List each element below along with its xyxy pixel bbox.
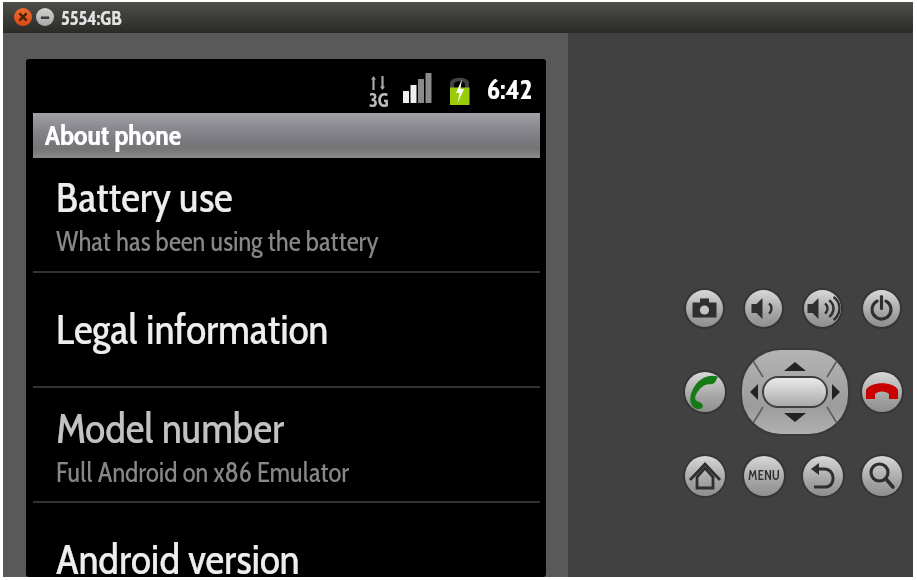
button[interactable]: Back [803,456,843,496]
button[interactable]: Volume up [804,290,841,327]
button[interactable]: End call [862,372,902,412]
staticText: Model number [56,402,285,453]
staticText: Android version [56,533,300,577]
staticText: 5554:GB [61,7,122,30]
button[interactable]: Select [764,378,826,406]
button[interactable]: Volume down [745,290,782,327]
staticText: What has been using the battery [56,225,379,258]
button[interactable]: Search [862,456,902,496]
button[interactable]: Power [863,290,900,327]
staticText: 6:42 [487,72,533,106]
button[interactable]: MENU [744,456,784,496]
button[interactable]: About phone [33,113,540,158]
button[interactable]: Legal information [26,274,546,389]
button[interactable]: Battery use [26,158,546,274]
staticText: Battery use [56,171,233,222]
button[interactable]: Close window [14,8,32,26]
button[interactable]: Android version [26,504,546,577]
button[interactable]: Call [685,372,725,412]
staticText: Full Android on x86 Emulator [56,456,350,489]
staticText: 3G [369,89,389,112]
button[interactable]: Camera [686,290,723,327]
staticText: MENU [748,467,780,483]
button[interactable]: Model number [26,389,546,504]
button[interactable]: Home [685,456,725,496]
button[interactable]: Minimize window [36,8,54,26]
staticText: About phone [45,118,182,152]
staticText: Legal information [56,303,329,354]
